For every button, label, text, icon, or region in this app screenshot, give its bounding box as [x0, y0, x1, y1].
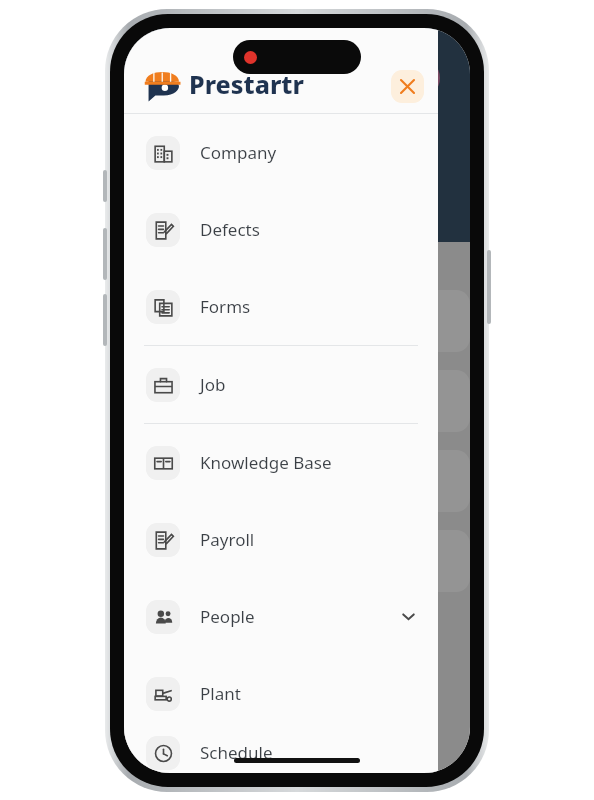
button[interactable]: Defects	[124, 191, 438, 268]
staticText: Plant	[200, 682, 241, 705]
button[interactable]: Schedule	[124, 732, 438, 773]
button[interactable]: Payroll	[124, 501, 438, 578]
staticText: Schedule	[200, 741, 273, 764]
staticText: People	[200, 605, 255, 628]
button[interactable]: Company	[124, 114, 438, 191]
staticText: Payroll	[200, 528, 255, 551]
button[interactable]: Prestartr	[144, 65, 304, 103]
button[interactable]: Knowledge Base	[124, 424, 438, 501]
staticText: Forms	[200, 295, 251, 318]
button[interactable]: Job	[124, 346, 438, 423]
button[interactable]: Forms	[124, 268, 438, 345]
staticText: Company	[200, 141, 277, 164]
button[interactable]: Plant	[124, 655, 438, 732]
staticText: Job	[200, 373, 226, 396]
staticText: Knowledge Base	[200, 451, 332, 474]
staticText: Prestartr	[189, 67, 304, 101]
staticText: Defects	[200, 218, 260, 241]
button[interactable]: People	[124, 578, 438, 655]
button[interactable]: Close menu	[391, 70, 424, 103]
